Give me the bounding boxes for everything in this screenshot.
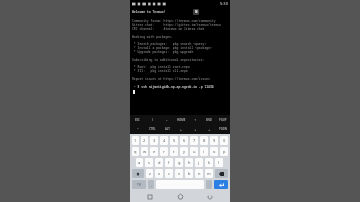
- button[interactable]: c: [165, 169, 173, 178]
- button[interactable]: k: [205, 158, 213, 167]
- staticText: m: [207, 171, 211, 176]
- button[interactable]: ↓: [188, 124, 202, 134]
- button[interactable]: 5: [170, 136, 178, 145]
- button[interactable]: e: [150, 147, 158, 156]
- button[interactable]: j: [195, 158, 203, 167]
- staticText: z: [149, 171, 151, 176]
- staticText: u: [193, 149, 196, 154]
- button[interactable]: 8: [200, 136, 208, 145]
- button[interactable]: 0: [220, 136, 228, 145]
- staticText: ,: [151, 182, 152, 187]
- button[interactable]: q: [132, 147, 139, 156]
- staticText: END: [206, 118, 212, 122]
- staticText: 9: [213, 138, 216, 143]
- button[interactable]: p: [220, 147, 228, 156]
- staticText: a: [138, 160, 141, 165]
- button[interactable]: m: [205, 169, 213, 178]
- button[interactable]: s: [145, 158, 153, 167]
- button[interactable]: d: [155, 158, 163, 167]
- button[interactable]: 3: [150, 136, 158, 145]
- staticText: ↓: [194, 128, 197, 131]
- button[interactable]: Backspace: [215, 169, 228, 178]
- staticText: Welcome to Termux!: [132, 10, 166, 14]
- button[interactable]: o: [210, 147, 218, 156]
- button[interactable]: 9: [210, 136, 218, 145]
- staticText: HOME: [177, 118, 186, 122]
- button[interactable]: Home: [170, 191, 190, 202]
- button[interactable]: PGDN: [216, 124, 230, 134]
- staticText: e: [153, 149, 156, 154]
- button[interactable]: ←: [174, 124, 188, 134]
- button[interactable]: l: [215, 158, 223, 167]
- staticText: →: [208, 128, 211, 131]
- staticText: p: [223, 149, 226, 154]
- button[interactable]: x: [155, 169, 163, 178]
- staticText: ~ $ ssh nijmeiigidh-np.ap.ngrok.io -p 11…: [132, 85, 214, 89]
- button[interactable]: a: [136, 158, 143, 167]
- staticText: j: [198, 160, 200, 165]
- button[interactable]: 1: [132, 136, 139, 145]
- button[interactable]: b: [185, 169, 193, 178]
- button[interactable]: CTRL: [145, 124, 160, 134]
- button[interactable]: /: [145, 115, 160, 124]
- button[interactable]: →: [202, 124, 216, 134]
- button[interactable]: t: [170, 147, 178, 156]
- button[interactable]: n: [195, 169, 203, 178]
- button[interactable]: f: [165, 158, 173, 167]
- button[interactable]: v: [175, 169, 183, 178]
- staticText: g: [178, 160, 181, 165]
- button[interactable]: HOME: [174, 115, 188, 124]
- button[interactable]: –: [160, 115, 174, 124]
- button[interactable]: ESC: [130, 115, 145, 124]
- staticText: IRC channel: #termux on libera.chat: [132, 27, 205, 31]
- staticText: f: [168, 160, 170, 165]
- staticText: 5:30: [220, 1, 228, 6]
- button[interactable]: g: [175, 158, 183, 167]
- button[interactable]: i: [200, 147, 208, 156]
- staticText: Gitter chat: https://gitter.im/termux/te…: [132, 23, 222, 27]
- button[interactable]: ↑: [188, 115, 202, 124]
- button[interactable]: ~: [130, 124, 145, 134]
- button[interactable]: 2: [141, 136, 148, 145]
- button[interactable]: Recents: [140, 191, 160, 202]
- button[interactable]: y: [180, 147, 188, 156]
- staticText: 7: [193, 138, 196, 143]
- staticText: 1: [134, 138, 137, 143]
- button[interactable]: 4: [160, 136, 168, 145]
- button[interactable]: w: [141, 147, 148, 156]
- staticText: x: [158, 171, 161, 176]
- button[interactable]: 6: [180, 136, 188, 145]
- staticText: .: [209, 182, 210, 187]
- button[interactable]: ?1€: [132, 180, 146, 189]
- staticText: * Install a package: pkg install <packag…: [132, 46, 212, 50]
- button[interactable]: ,: [148, 180, 154, 189]
- staticText: ~: [137, 127, 139, 131]
- staticText: CTRL: [149, 127, 156, 131]
- button[interactable]: z: [146, 169, 153, 178]
- button[interactable]: Shift: [132, 169, 144, 178]
- button[interactable]: Enter: [214, 180, 228, 189]
- staticText: N: [195, 10, 198, 14]
- button[interactable]: PGUP: [216, 115, 230, 124]
- button[interactable]: r: [160, 147, 168, 156]
- staticText: Report issues at https://termux.com/issu…: [132, 77, 210, 81]
- staticText: 2: [143, 138, 146, 143]
- staticText: ESC: [135, 118, 140, 122]
- staticText: ?1€: [137, 183, 142, 187]
- staticText: * Upgrade packages: pkg upgrade: [132, 50, 194, 54]
- staticText: Community forum: https://termux.com/comm…: [132, 19, 216, 23]
- staticText: 8: [203, 138, 206, 143]
- button[interactable]: END: [202, 115, 216, 124]
- button[interactable]: Back: [200, 191, 220, 202]
- button[interactable]: 7: [190, 136, 198, 145]
- staticText: * X11: pkg install x11-repo: [132, 69, 188, 73]
- button[interactable]: ALT: [160, 124, 174, 134]
- staticText: h: [188, 160, 191, 165]
- staticText: n: [198, 171, 201, 176]
- staticText: 6: [183, 138, 186, 143]
- button[interactable]: u: [190, 147, 198, 156]
- staticText: 5: [173, 138, 176, 143]
- button[interactable]: .: [206, 180, 212, 189]
- button[interactable]: h: [185, 158, 193, 167]
